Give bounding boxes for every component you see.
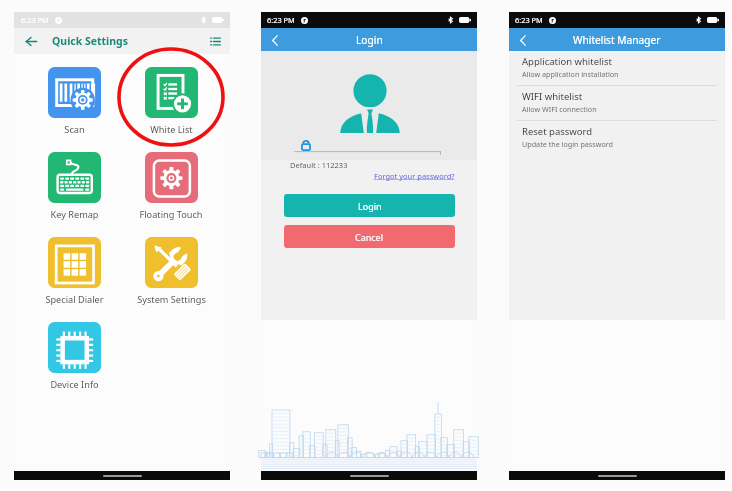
staticText: Scan	[64, 123, 85, 136]
button[interactable]: Forgot your password?	[374, 171, 455, 181]
staticText: 6:23 PM	[21, 15, 49, 25]
staticText: WIFI whitelist	[522, 90, 583, 103]
staticText: Cancel	[355, 231, 384, 243]
button[interactable]: Cancel	[284, 225, 455, 248]
staticText: Whitelist Manager	[573, 33, 661, 47]
staticText: Floating Touch	[139, 208, 203, 221]
button[interactable]: White List	[129, 67, 213, 136]
staticText: 6:23 PM	[515, 15, 543, 25]
button[interactable]: WIFI whitelist	[509, 86, 725, 121]
staticText: Device Info	[50, 378, 99, 391]
button[interactable]: Device Info	[32, 322, 116, 391]
staticText: Quick Settings	[52, 34, 128, 48]
button[interactable]: List view	[206, 32, 224, 50]
staticText: Allow application installation	[522, 69, 619, 79]
button[interactable]: Reset password	[509, 121, 725, 156]
staticText: Allow WIFI connection	[522, 104, 597, 114]
staticText: Login	[358, 200, 382, 212]
staticText: Login	[356, 33, 383, 47]
button[interactable]: Login	[284, 194, 455, 217]
button[interactable]: Scan	[32, 67, 116, 136]
staticText: White List	[150, 123, 193, 136]
button[interactable]: System Settings	[129, 237, 213, 306]
button[interactable]: Application whitelist	[509, 51, 725, 86]
staticText: Default : 112233	[290, 160, 348, 170]
staticText: System Settings	[137, 293, 206, 306]
staticText: Key Remap	[50, 208, 99, 221]
staticText: Application whitelist	[522, 55, 612, 68]
staticText: Special Dialer	[45, 293, 104, 306]
button[interactable]: Back	[266, 31, 284, 49]
button[interactable]: Special Dialer	[32, 237, 116, 306]
button[interactable]: Back	[514, 31, 532, 49]
staticText: Reset password	[522, 125, 593, 138]
staticText: 6:23 PM	[267, 15, 295, 25]
button[interactable]: Back	[22, 32, 40, 50]
button[interactable]: Key Remap	[32, 152, 116, 221]
staticText: Update the login password	[522, 139, 613, 149]
button[interactable]: Floating Touch	[129, 152, 213, 221]
